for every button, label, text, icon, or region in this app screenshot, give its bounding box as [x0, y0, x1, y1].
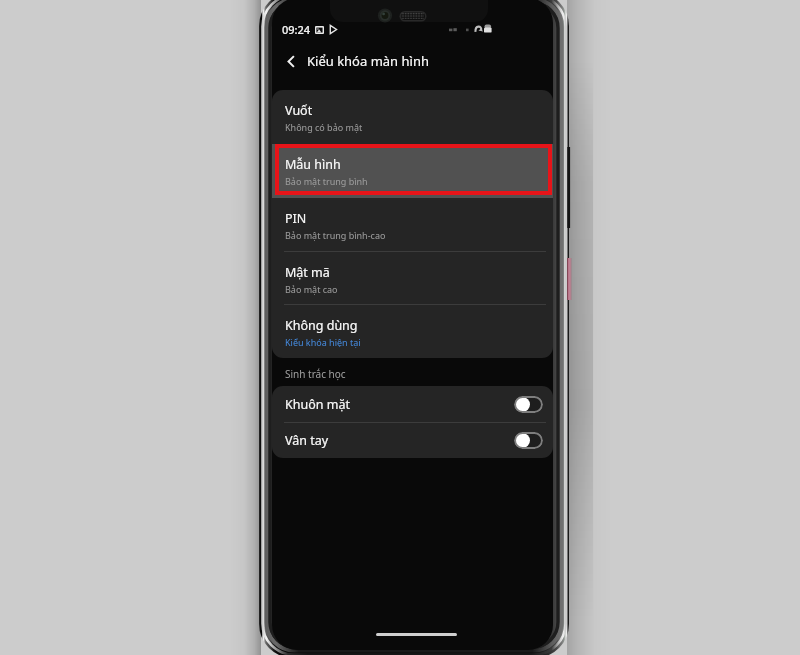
button[interactable]: Toggle Khuôn mặt: [514, 396, 543, 413]
button[interactable]: Không dùng: [272, 306, 553, 358]
staticText: Sinh trắc học: [285, 367, 346, 381]
button[interactable]: Back: [274, 44, 308, 78]
staticText: Kiểu khóa hiện tại: [285, 336, 361, 348]
button[interactable]: Mẫu hình: [272, 144, 553, 198]
staticText: Bảo mật trung bình: [285, 175, 368, 187]
button[interactable]: PIN: [272, 198, 553, 252]
button[interactable]: Vân tay: [272, 422, 553, 458]
button[interactable]: Vuốt: [272, 90, 553, 144]
staticText: Không có bảo mật: [285, 121, 363, 133]
staticText: Bảo mật trung bình-cao: [285, 229, 386, 241]
staticText: Vân tay: [285, 432, 329, 449]
button[interactable]: Toggle Vân tay: [514, 432, 543, 449]
button[interactable]: Mật mã: [272, 252, 553, 306]
staticText: Không dùng: [285, 317, 358, 334]
staticText: Mật mã: [285, 264, 330, 281]
button[interactable]: Khuôn mặt: [272, 386, 553, 422]
staticText: Mẫu hình: [285, 156, 341, 173]
staticText: Bảo mật cao: [285, 283, 338, 295]
staticText: Kiểu khóa màn hình: [307, 52, 429, 70]
staticText: Vuốt: [285, 102, 313, 119]
staticText: PIN: [285, 210, 307, 227]
staticText: Khuôn mặt: [285, 396, 350, 413]
staticText: 09:24: [282, 22, 311, 37]
